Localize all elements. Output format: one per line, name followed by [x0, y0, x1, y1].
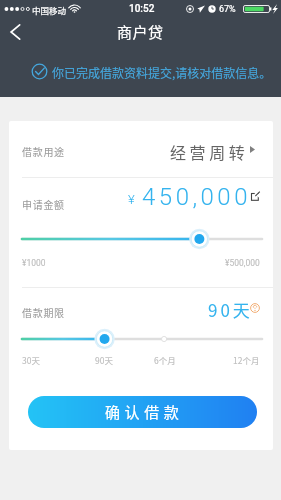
- staticText: ¥500,000: [225, 258, 260, 268]
- staticText: 6个月: [154, 354, 176, 366]
- staticText: 67%: [219, 4, 236, 15]
- staticText: 确认借款: [105, 401, 184, 423]
- button[interactable]: Slider: [9, 327, 273, 351]
- staticText: 借款用途: [22, 144, 65, 158]
- button[interactable]: Slider: [9, 227, 273, 251]
- button[interactable]: 借款用途: [9, 121, 273, 177]
- staticText: 经营周转: [170, 140, 249, 163]
- staticText: 借款期限: [22, 305, 65, 319]
- staticText: ¥: [128, 192, 135, 207]
- staticText: ¥1000: [22, 258, 46, 268]
- staticText: 90天: [208, 297, 253, 322]
- staticText: 90天: [95, 354, 113, 366]
- staticText: 450,000: [142, 183, 251, 211]
- staticText: 10:52: [129, 3, 155, 15]
- button[interactable]: Back: [0, 18, 30, 46]
- button[interactable]: 确认借款: [28, 396, 257, 428]
- staticText: 申请金额: [22, 197, 65, 211]
- staticText: 12个月: [233, 354, 260, 366]
- staticText: 你已完成借款资料提交,请核对借款信息。: [52, 64, 272, 81]
- staticText: 30天: [22, 354, 40, 366]
- staticText: 中国移动: [32, 4, 67, 16]
- staticText: 商户贷: [117, 21, 164, 43]
